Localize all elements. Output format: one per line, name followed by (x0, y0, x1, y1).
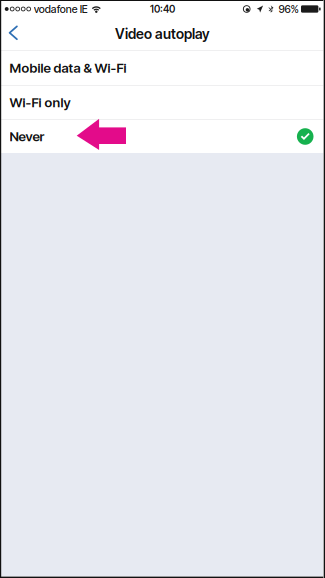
staticText: vodafone IE (34, 2, 88, 15)
staticText: Mobile data & Wi-Fi (9, 60, 126, 76)
staticText: 96% (278, 2, 298, 15)
button[interactable]: Wi-Fi only (0, 86, 325, 119)
button[interactable]: Back (0, 18, 40, 50)
button[interactable]: Mobile data & Wi-Fi (0, 51, 325, 85)
staticText: Video autoplay (115, 25, 210, 42)
staticText: Never (9, 128, 44, 144)
staticText: 10:40 (150, 3, 175, 15)
button[interactable]: Never (0, 120, 325, 153)
staticText: Wi-Fi only (9, 94, 70, 110)
